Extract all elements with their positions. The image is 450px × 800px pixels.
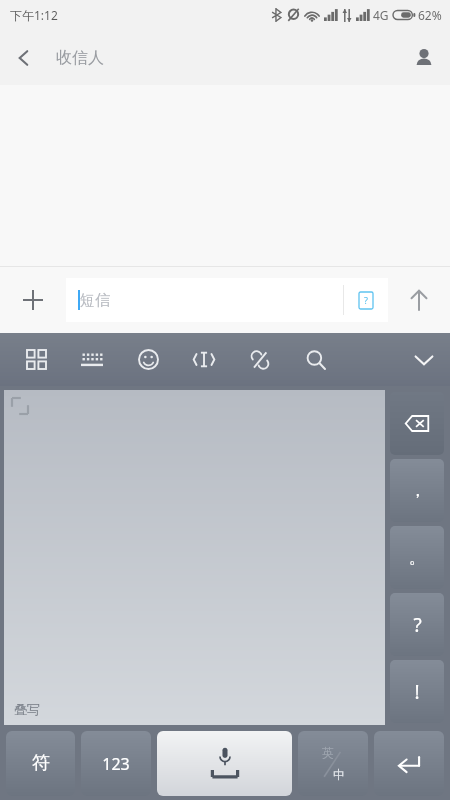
button[interactable]: Backspace — [390, 392, 444, 455]
button[interactable]: Move cursor — [176, 333, 232, 386]
staticText: 123 — [102, 753, 130, 775]
button[interactable]: 。 — [390, 526, 444, 589]
staticText: 符 — [32, 752, 50, 775]
button[interactable]: Message info — [344, 278, 388, 322]
staticText: 62% — [418, 7, 442, 23]
button[interactable]: Contacts — [398, 32, 450, 84]
staticText: ! — [414, 679, 420, 705]
staticText: 英 — [322, 745, 334, 760]
staticText: ， — [409, 480, 426, 501]
button[interactable]: Keyboard layouts — [8, 333, 64, 386]
staticText: 下午1:12 — [10, 7, 58, 23]
other: Enter — [397, 755, 421, 773]
button[interactable]: 英 — [298, 731, 368, 796]
button[interactable]: Keyboard — [64, 333, 120, 386]
button[interactable]: 短信 — [66, 278, 388, 322]
other: Backspace — [405, 415, 429, 432]
button[interactable]: 123 — [81, 731, 151, 796]
staticText: 中 — [333, 767, 345, 782]
staticText: 叠写 — [14, 701, 40, 717]
button[interactable]: Emoji — [120, 333, 176, 386]
button[interactable]: Hide keyboard — [398, 334, 450, 386]
button[interactable]: Back — [0, 34, 48, 82]
button[interactable]: 符 — [6, 731, 75, 796]
staticText: 短信 — [80, 291, 110, 310]
staticText: 收信人 — [56, 48, 104, 68]
button[interactable]: Handwriting area — [4, 390, 385, 725]
button[interactable]: Clipboard — [232, 333, 288, 386]
button[interactable]: ， — [390, 459, 444, 522]
button[interactable]: ? — [390, 593, 444, 656]
button[interactable]: Add attachment — [0, 267, 66, 333]
button[interactable]: Search — [288, 333, 344, 386]
button[interactable]: Send — [388, 267, 450, 333]
button[interactable]: Space / Voice input — [157, 731, 292, 796]
staticText: ? — [364, 294, 368, 306]
staticText: ? — [413, 612, 422, 638]
staticText: 4G — [373, 7, 389, 23]
button[interactable]: ! — [390, 660, 444, 723]
staticText: 。 — [409, 547, 426, 568]
button[interactable]: Enter — [374, 731, 444, 796]
